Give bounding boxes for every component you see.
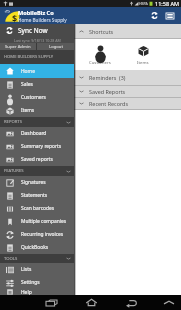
button[interactable]: Recent apps (32, 295, 71, 310)
staticText: HOME BUILDERS SUPPLY (4, 54, 54, 60)
staticText: $ (12, 12, 18, 24)
button[interactable]: Scan barcodes (0, 202, 74, 215)
button[interactable]: Summary reports (0, 140, 74, 153)
button[interactable]: Sales (0, 78, 74, 91)
button[interactable]: Items (0, 104, 74, 117)
staticText: Multiple companies (21, 218, 67, 225)
staticText: Help (21, 289, 32, 295)
staticText: Recent Records (89, 100, 128, 107)
staticText: Items (21, 107, 35, 114)
button[interactable]: Customers (0, 91, 74, 104)
staticText: Recurring invoices (21, 231, 64, 238)
staticText: REPORTS (4, 119, 22, 125)
staticText: Home Builders Supply (18, 17, 67, 23)
button[interactable]: Recent Records (0, 98, 181, 109)
button[interactable]: Dashboard (0, 127, 74, 140)
staticText: 11:58 AM (155, 0, 179, 7)
button[interactable]: Signatures (0, 176, 74, 189)
button[interactable]: Super Admin (0, 43, 36, 50)
button[interactable]: Menu (162, 7, 178, 24)
button[interactable]: QuickBooks (0, 241, 74, 254)
staticText: Last sync: 9/18/13 10:28 AM (14, 38, 61, 43)
button[interactable]: Multiple companies (0, 215, 74, 228)
button[interactable]: Customers (86, 39, 114, 70)
button[interactable]: Reminders (3) (0, 70, 181, 85)
staticText: Items (137, 59, 149, 65)
staticText: MobileBiz Co (18, 9, 54, 17)
button[interactable]: Saved Reports (0, 86, 181, 97)
staticText: Signatures (21, 179, 46, 186)
staticText: Settings (21, 279, 40, 286)
staticText: Sales (21, 81, 33, 88)
staticText: FEATURES (4, 168, 24, 174)
staticText: Logout (49, 44, 63, 50)
staticText: Customers (89, 59, 111, 65)
staticText: Dashboard (21, 130, 47, 137)
staticText: Shortcuts (89, 28, 114, 35)
button[interactable]: Sync Now (0, 24, 74, 43)
staticText: QuickBooks (21, 244, 49, 251)
staticText: Reminders (3) (89, 74, 126, 81)
button[interactable]: Saved reports (0, 153, 74, 166)
staticText: Home (21, 68, 35, 75)
staticText: Statements (21, 192, 48, 199)
staticText: TOOLS (4, 256, 18, 262)
staticText: Saved Reports (89, 88, 126, 95)
staticText: Summary reports (21, 143, 62, 150)
staticText: Saved reports (21, 156, 53, 163)
button[interactable]: Sync (146, 7, 162, 24)
button[interactable]: Lists (0, 263, 74, 276)
staticText: Lists (21, 266, 32, 273)
staticText: Customers (21, 94, 46, 101)
staticText: HSPA (139, 1, 148, 6)
button[interactable]: Settings (0, 276, 74, 289)
staticText: Scan barcodes (21, 205, 55, 212)
button[interactable]: Help (0, 289, 74, 295)
button[interactable]: Items (129, 39, 157, 70)
button[interactable]: Shortcuts (0, 24, 181, 38)
button[interactable]: Back (111, 295, 151, 310)
button[interactable]: Expand (154, 295, 181, 310)
button[interactable]: Home (71, 295, 111, 310)
button[interactable]: Logout (37, 43, 74, 50)
button[interactable]: Home (0, 64, 74, 78)
button[interactable]: Recurring invoices (0, 228, 74, 241)
staticText: Sync Now (18, 26, 48, 35)
staticText: Super Admin (5, 44, 31, 50)
button[interactable]: Statements (0, 189, 74, 202)
